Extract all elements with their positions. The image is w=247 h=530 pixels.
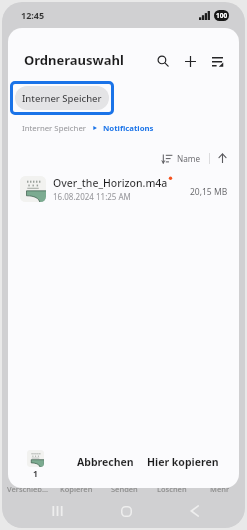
button[interactable]: Startbildschirm [113, 498, 139, 524]
button[interactable]: Mehr Optionen [204, 48, 230, 74]
button[interactable]: Over_the_Horizon.m4a [8, 172, 239, 206]
staticText: Ordnerauswahl [24, 51, 124, 69]
staticText: Löschen [157, 484, 187, 494]
button[interactable]: Zurück [181, 498, 207, 524]
staticText: 100 [216, 11, 228, 20]
staticText: Hier kopieren [147, 455, 219, 469]
staticText: Interner Speicher [22, 123, 87, 134]
button[interactable]: Suchen [150, 48, 176, 74]
staticText: Mehr [210, 484, 230, 494]
button[interactable]: Name [159, 150, 204, 167]
staticText: Abbrechen [77, 455, 134, 469]
staticText: Interner Speicher [22, 92, 102, 105]
button[interactable]: Ordnerauswahl [24, 47, 124, 73]
staticText: 12:45 [21, 9, 45, 21]
staticText: 1 [33, 468, 38, 480]
button[interactable]: Abbrechen [72, 450, 139, 474]
button[interactable]: Letzte Apps [44, 498, 70, 524]
staticText: Over_the_Horizon.m4a [53, 176, 168, 190]
staticText: 16.08.2024 11:25 AM [53, 191, 131, 202]
staticText: Notifications [103, 123, 154, 134]
staticText: 20,15 MB [190, 186, 228, 198]
button[interactable]: Hier kopieren [142, 450, 224, 474]
button[interactable]: Interner Speicher [15, 86, 109, 110]
staticText: Kopieren [60, 484, 93, 494]
staticText: Senden [111, 484, 138, 494]
button[interactable]: Hinzufügen [177, 48, 203, 74]
staticText: Name [177, 153, 201, 164]
button[interactable]: Sortierrichtung [213, 149, 231, 167]
staticText: Verschieb... [7, 484, 49, 494]
